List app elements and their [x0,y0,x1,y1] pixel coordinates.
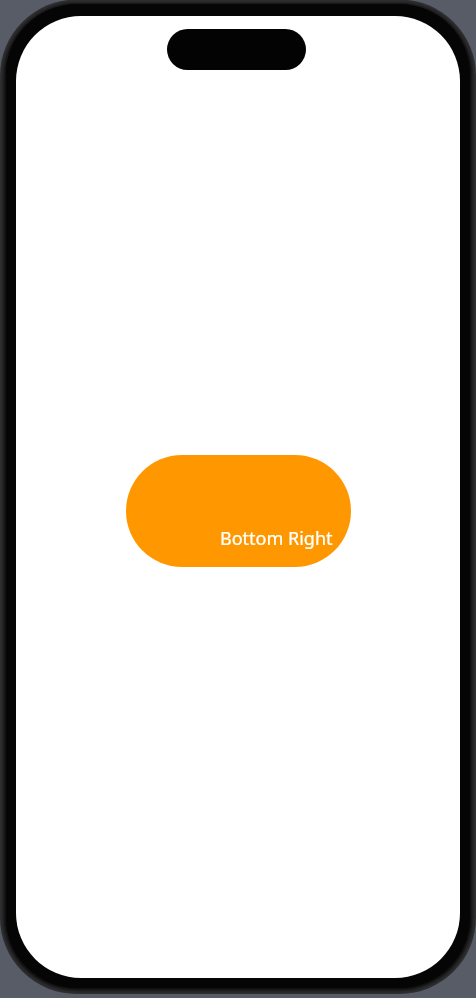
button[interactable]: Bottom Right [126,455,351,567]
staticText: Bottom Right [220,526,333,551]
